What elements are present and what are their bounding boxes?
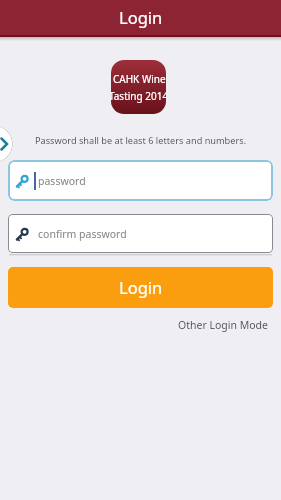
- button[interactable]: password: [8, 160, 273, 201]
- button[interactable]: Other Login Mode: [178, 318, 268, 332]
- staticText: Other Login Mode: [178, 318, 268, 332]
- button[interactable]: confirm password: [8, 214, 273, 253]
- button[interactable]: [0, 125, 13, 163]
- staticText: Login: [119, 276, 163, 298]
- button[interactable]: CAHK Wine: [111, 60, 166, 114]
- staticText: CAHK Wine: [113, 72, 166, 86]
- staticText: confirm password: [38, 227, 127, 241]
- button[interactable]: Login: [8, 267, 273, 308]
- staticText: password: [38, 174, 86, 188]
- staticText: Password shall be at least 6 letters and…: [35, 134, 247, 147]
- staticText: Tasting 2014: [111, 89, 166, 103]
- staticText: Login: [119, 6, 163, 28]
